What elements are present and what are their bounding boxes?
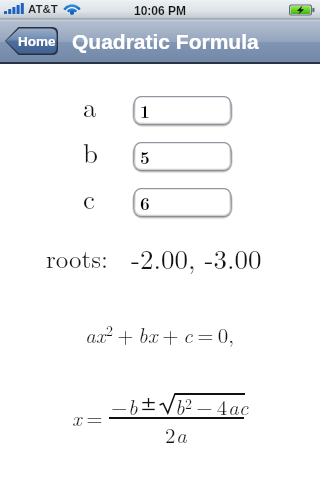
- staticText: ax: [85, 319, 106, 349]
- staticText: bx: [138, 319, 158, 349]
- staticText: c: [183, 319, 193, 349]
- staticText: b: [83, 133, 99, 171]
- staticText: 10:06 PM: [134, 4, 187, 17]
- button[interactable]: 5: [132, 140, 232, 173]
- staticText: x: [72, 402, 82, 432]
- staticText: 5: [140, 145, 150, 169]
- staticText: 1: [140, 99, 150, 123]
- staticText: 2: [185, 393, 192, 413]
- staticText: − 4: [192, 391, 228, 421]
- staticText: b: [128, 391, 138, 421]
- staticText: 6: [140, 191, 150, 215]
- staticText: AT&T: [28, 3, 58, 16]
- staticText: +: [158, 319, 183, 349]
- staticText: Quadratic Formula: [72, 30, 259, 53]
- staticText: roots:: [46, 240, 109, 275]
- staticText: ac: [228, 391, 249, 421]
- staticText: −: [111, 391, 128, 421]
- staticText: -2.00, -3.00: [131, 239, 262, 277]
- staticText: c: [83, 179, 95, 217]
- staticText: a: [176, 419, 187, 449]
- staticText: 2: [106, 320, 113, 340]
- staticText: b: [175, 391, 185, 421]
- staticText: = 0,: [193, 319, 235, 349]
- button[interactable]: 1: [132, 94, 232, 127]
- staticText: Home: [18, 34, 56, 49]
- button[interactable]: 6: [132, 186, 232, 219]
- button[interactable]: Home: [5, 27, 58, 55]
- staticText: =: [82, 402, 103, 432]
- staticText: a: [83, 87, 97, 125]
- staticText: 2: [165, 419, 176, 449]
- staticText: +: [113, 319, 138, 349]
